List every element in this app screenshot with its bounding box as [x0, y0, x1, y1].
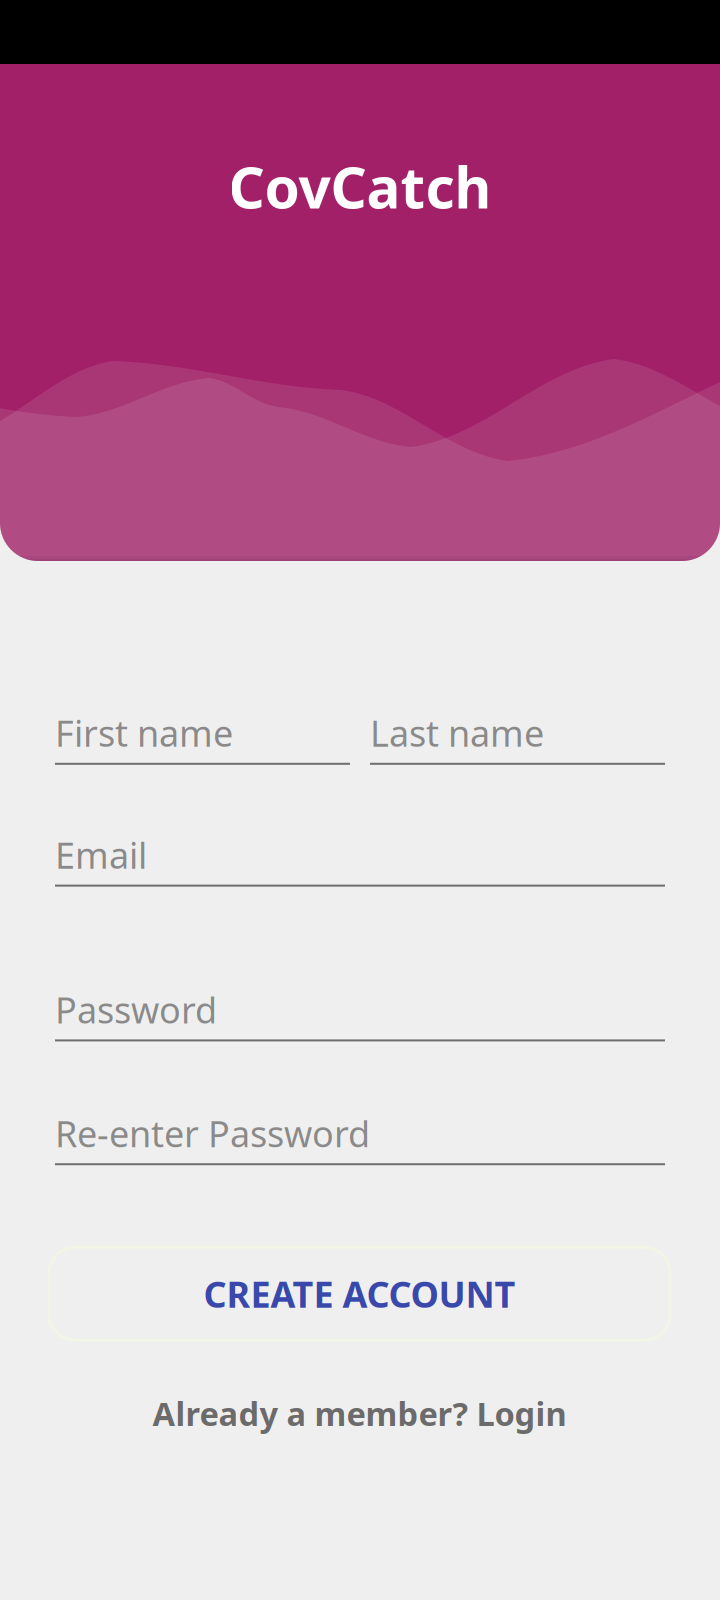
staticText: Last name: [370, 709, 544, 757]
button[interactable]: Email: [55, 831, 665, 887]
staticText: Email: [55, 831, 147, 879]
button[interactable]: Last name: [370, 709, 665, 765]
button[interactable]: CREATE ACCOUNT: [49, 1247, 670, 1340]
staticText: CREATE ACCOUNT: [203, 1270, 515, 1318]
button[interactable]: Already a member? Login: [49, 1391, 670, 1436]
staticText: CovCatch: [228, 148, 491, 225]
button[interactable]: Password: [55, 986, 665, 1041]
button[interactable]: Re-enter Password: [55, 1109, 665, 1165]
button[interactable]: First name: [55, 709, 350, 765]
staticText: First name: [55, 709, 233, 757]
staticText: Already a member? Login: [152, 1391, 566, 1436]
staticText: Password: [55, 986, 217, 1033]
staticText: Re-enter Password: [55, 1109, 370, 1157]
